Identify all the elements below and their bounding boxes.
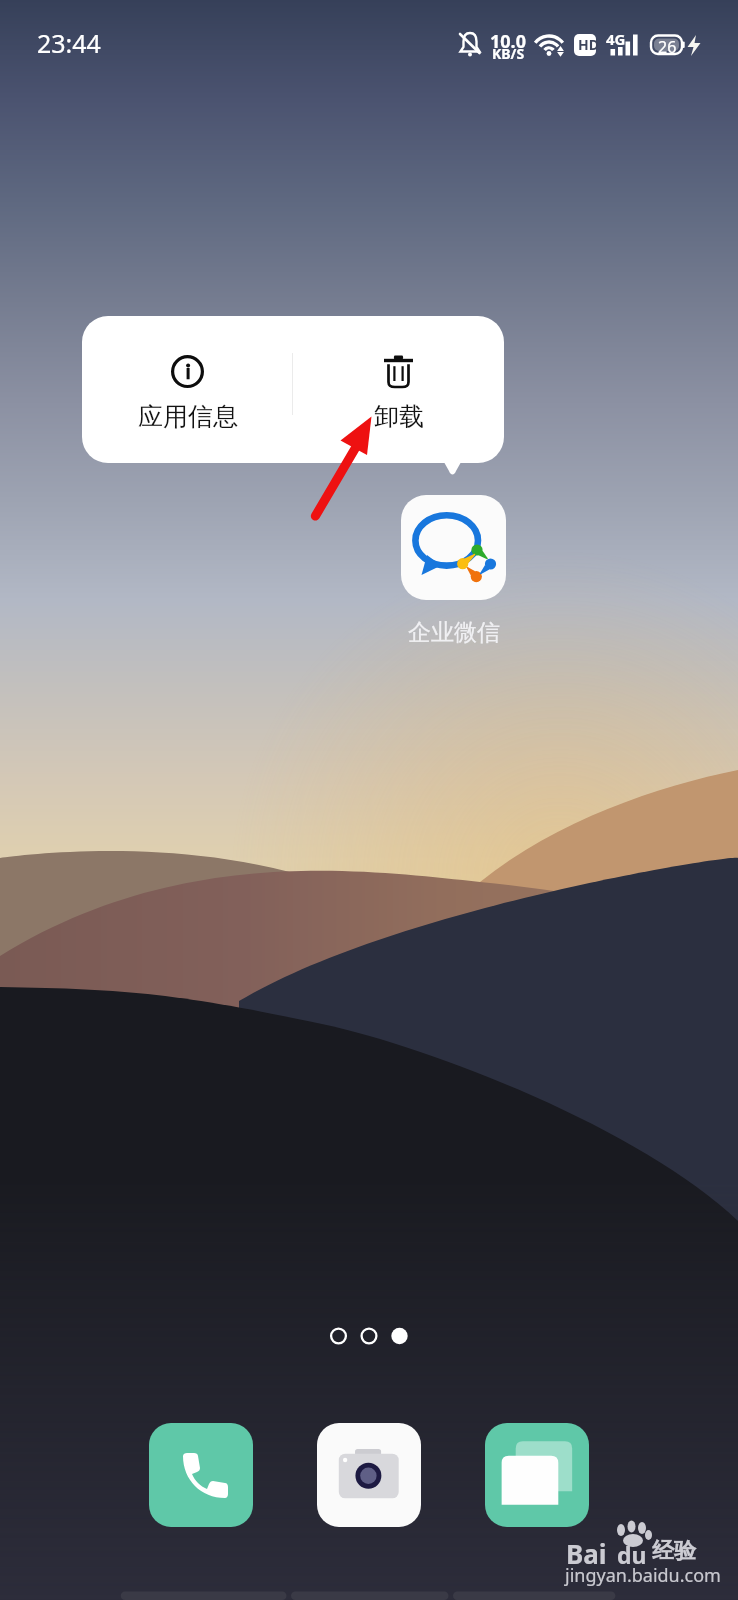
staticText: 应用信息	[138, 401, 238, 432]
staticText: 4G	[606, 29, 626, 49]
button[interactable]: 卸载	[293, 316, 504, 463]
staticText: 经验	[652, 1537, 696, 1565]
staticText: jingyan.baidu.com	[565, 1563, 721, 1588]
staticText: 23:44	[37, 26, 101, 60]
staticText: du	[617, 1539, 647, 1570]
staticText: 卸载	[374, 401, 424, 432]
staticText: 企业微信	[408, 618, 500, 647]
staticText: 26	[658, 36, 677, 58]
staticText: HD	[578, 35, 599, 54]
staticText: 10.0	[490, 29, 526, 54]
staticText: Bai	[566, 1536, 607, 1571]
button[interactable]: Camera	[317, 1423, 421, 1527]
button[interactable]: 应用信息	[82, 316, 293, 463]
button[interactable]: Phone	[149, 1423, 253, 1527]
button[interactable]: Messages	[485, 1423, 589, 1527]
staticText: KB/S	[492, 44, 525, 63]
button[interactable]: 企业微信	[401, 495, 506, 600]
